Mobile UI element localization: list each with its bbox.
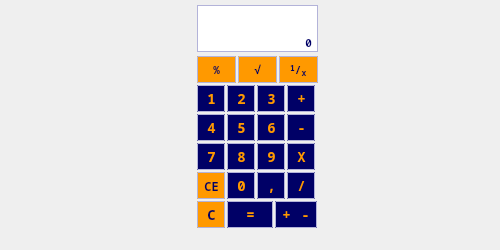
button[interactable]: - xyxy=(287,114,315,141)
button[interactable]: X xyxy=(287,143,315,170)
staticText: % xyxy=(213,62,220,77)
staticText: 4 xyxy=(207,118,216,137)
staticText: / xyxy=(297,176,306,195)
staticText: 0 xyxy=(305,35,312,50)
staticText: 9 xyxy=(267,147,276,166)
button[interactable]: = xyxy=(227,201,273,228)
button[interactable]: 7 xyxy=(197,143,225,170)
button[interactable]: Reciprocal xyxy=(279,56,318,83)
staticText: , xyxy=(267,176,276,195)
staticText: 7 xyxy=(207,147,216,166)
staticText: - xyxy=(301,205,310,224)
staticText: 6 xyxy=(267,118,276,137)
staticText: 2 xyxy=(237,89,246,108)
button[interactable]: + xyxy=(287,85,315,112)
button[interactable]: C xyxy=(197,201,225,228)
staticText: - xyxy=(297,118,306,137)
button[interactable]: Plus minus xyxy=(275,201,317,228)
staticText: 0 xyxy=(237,176,246,195)
button[interactable]: 0 xyxy=(227,172,255,199)
staticText: 1/x xyxy=(290,62,307,78)
staticText: 8 xyxy=(237,147,246,166)
staticText: √ xyxy=(254,62,261,77)
button[interactable]: 6 xyxy=(257,114,285,141)
button[interactable]: Square root xyxy=(238,56,277,83)
button[interactable]: Percent xyxy=(197,56,236,83)
button[interactable]: 1 xyxy=(197,85,225,112)
staticText: 3 xyxy=(267,89,276,108)
button[interactable]: 2 xyxy=(227,85,255,112)
staticText: 1 xyxy=(207,89,216,108)
button[interactable]: 5 xyxy=(227,114,255,141)
button[interactable]: 9 xyxy=(257,143,285,170)
staticText: C xyxy=(207,205,216,224)
button[interactable]: / xyxy=(287,172,315,199)
staticText: CE xyxy=(204,178,219,194)
button[interactable]: 8 xyxy=(227,143,255,170)
button[interactable]: , xyxy=(257,172,285,199)
button[interactable]: 3 xyxy=(257,85,285,112)
button[interactable]: 4 xyxy=(197,114,225,141)
staticText: = xyxy=(246,205,255,224)
staticText: 5 xyxy=(237,118,246,137)
staticText: X xyxy=(297,147,306,166)
staticText: + xyxy=(297,89,306,108)
button[interactable]: CE xyxy=(197,172,225,199)
staticText: + xyxy=(282,205,291,224)
button[interactable]: Display xyxy=(197,5,318,52)
